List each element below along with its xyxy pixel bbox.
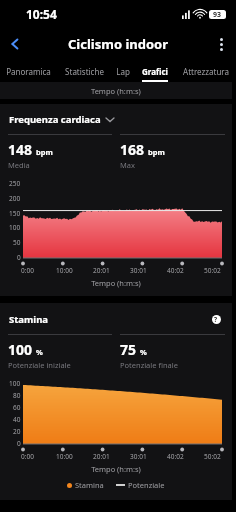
staticText: Max: [120, 160, 135, 170]
button[interactable]: Back: [0, 29, 30, 59]
staticText: ?: [214, 315, 218, 324]
staticText: Stamina: [75, 480, 104, 490]
staticText: 0:00: [21, 266, 34, 275]
staticText: 80: [13, 391, 21, 400]
staticText: 75: [120, 340, 137, 359]
staticText: bpm: [36, 147, 53, 157]
staticText: Tempo (h:m:s): [91, 86, 141, 96]
staticText: Lap: [116, 66, 130, 77]
staticText: 20:01: [93, 452, 110, 461]
staticText: 100: [9, 223, 21, 232]
staticText: Panoramica: [6, 66, 51, 77]
staticText: %: [140, 347, 147, 357]
staticText: 0: [17, 253, 21, 262]
staticText: Grafici: [142, 66, 168, 77]
staticText: 10:00: [56, 266, 73, 275]
staticText: Frequenza cardiaca: [9, 113, 101, 126]
staticText: 168: [120, 140, 145, 159]
staticText: 50:02: [204, 452, 221, 461]
staticText: 148: [8, 140, 33, 159]
staticText: %: [36, 347, 43, 357]
staticText: Potenziale: [128, 480, 165, 490]
staticText: Stamina: [9, 313, 49, 326]
staticText: Statistiche: [65, 66, 104, 77]
staticText: 30:01: [130, 266, 147, 275]
staticText: bpm: [148, 147, 165, 157]
button[interactable]: Help about Stamina: [209, 312, 223, 326]
staticText: 10:00: [56, 452, 73, 461]
staticText: 250: [9, 179, 21, 188]
staticText: 60: [13, 403, 21, 412]
staticText: 200: [9, 194, 21, 203]
staticText: Tempo (h:m:s): [0, 278, 232, 288]
staticText: 20: [13, 427, 21, 436]
button[interactable]: Panoramica: [0, 60, 57, 82]
staticText: 40:02: [167, 266, 184, 275]
staticText: 0: [17, 439, 21, 448]
staticText: 0:00: [21, 452, 34, 461]
staticText: 40: [13, 415, 21, 424]
staticText: 50: [13, 238, 21, 247]
staticText: Potenziale finale: [120, 360, 178, 370]
staticText: 93: [213, 10, 222, 19]
staticText: Attrezzatura: [183, 66, 229, 77]
staticText: Ciclismo indoor: [68, 35, 169, 53]
button[interactable]: Grafici: [135, 60, 175, 82]
staticText: 20:01: [93, 266, 110, 275]
button[interactable]: Lap: [111, 60, 135, 82]
button[interactable]: Frequenza cardiaca: [9, 113, 232, 126]
staticText: 100: [8, 340, 33, 359]
staticText: 50:02: [204, 266, 221, 275]
staticText: 10:54: [26, 6, 57, 22]
button[interactable]: Statistiche: [57, 60, 111, 82]
staticText: Media: [8, 160, 30, 170]
staticText: 40:02: [167, 452, 184, 461]
staticText: Tempo (h:m:s): [0, 464, 232, 474]
button[interactable]: More options: [206, 29, 236, 59]
staticText: 30:01: [130, 452, 147, 461]
staticText: 100: [9, 379, 21, 388]
staticText: Potenziale iniziale: [8, 360, 71, 370]
staticText: 150: [9, 209, 21, 218]
button[interactable]: Attrezzatura: [175, 60, 236, 82]
